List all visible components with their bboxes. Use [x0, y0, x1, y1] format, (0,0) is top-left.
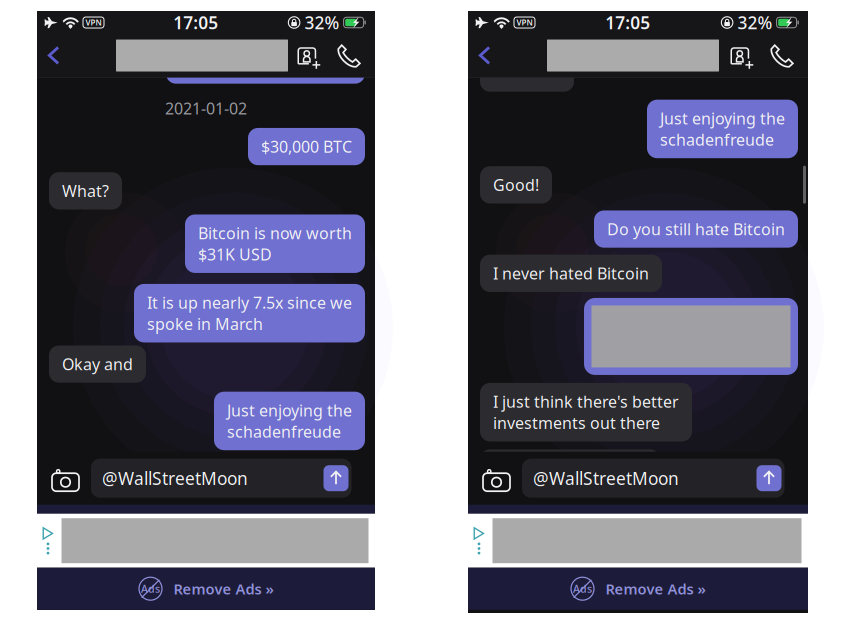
staticText: Okay and — [62, 353, 133, 375]
button[interactable]: Camera — [52, 467, 79, 490]
staticText: Remove Ads » — [173, 579, 273, 598]
staticText: Just enjoying the schadenfreude — [227, 400, 352, 442]
staticText: 2021-01-02 — [165, 98, 247, 119]
staticText: @WallStreetMoon — [102, 467, 248, 490]
staticText: Just enjoying the schadenfreude — [660, 108, 785, 150]
button[interactable]: Add contact — [725, 34, 755, 77]
staticText: 17:05 — [173, 11, 218, 34]
staticText: @WallStreetMoon — [533, 467, 679, 490]
staticText: I just think there's better investments … — [493, 391, 679, 433]
staticText: Bitcoin is now worth $31K USD — [198, 222, 352, 265]
staticText: Do you still hate Bitcoin — [607, 218, 785, 240]
button[interactable]: Ads — [37, 568, 375, 610]
button[interactable]: Send — [756, 465, 781, 491]
staticText: Good! — [493, 174, 539, 195]
staticText: VPN — [85, 17, 101, 28]
staticText: 32% — [305, 11, 340, 34]
button[interactable]: Add contact — [292, 34, 322, 77]
button[interactable]: Camera — [483, 467, 510, 490]
button[interactable]: Ads — [468, 568, 808, 610]
staticText: Ads — [141, 582, 160, 596]
staticText: $30,000 BTC — [261, 136, 352, 157]
button[interactable]: Send — [323, 465, 348, 491]
button[interactable]: Back — [39, 34, 69, 77]
button[interactable]: Call — [332, 34, 366, 77]
staticText: I never hated Bitcoin — [493, 263, 649, 284]
button[interactable]: Call — [765, 34, 799, 77]
staticText: 17:05 — [605, 11, 650, 34]
staticText: VPN — [516, 17, 532, 28]
staticText: What? — [62, 180, 109, 201]
button[interactable]: Back — [470, 34, 500, 77]
staticText: It is up nearly 7.5x since we spoke in M… — [147, 292, 352, 334]
staticText: Remove Ads » — [605, 579, 705, 598]
staticText: Ads — [573, 582, 592, 596]
staticText: 32% — [738, 11, 773, 34]
